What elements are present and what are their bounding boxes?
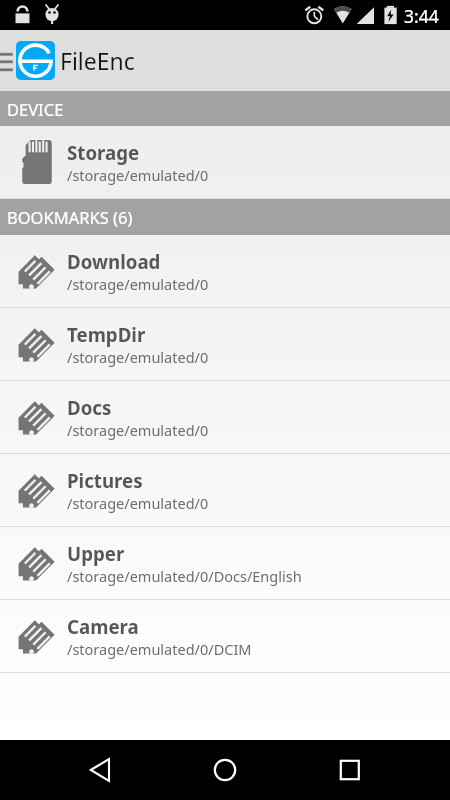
button[interactable]: Download (0, 235, 450, 307)
button[interactable]: Upper (0, 527, 450, 599)
staticText: /storage/emulated/0 (67, 347, 209, 367)
staticText: /storage/emulated/0 (67, 493, 209, 513)
staticText: TempDir (67, 322, 146, 347)
staticText: Upper (67, 541, 125, 566)
staticText: BOOKMARKS (6) (7, 206, 133, 228)
button[interactable]: Pictures (0, 454, 450, 526)
staticText: Camera (67, 614, 139, 639)
button[interactable]: Recent apps (312, 740, 388, 800)
button[interactable]: Camera (0, 600, 450, 672)
staticText: /storage/emulated/0 (67, 274, 209, 294)
button[interactable]: Storage (0, 126, 450, 198)
staticText: DEVICE (7, 98, 64, 120)
staticText: /storage/emulated/0 (67, 420, 209, 440)
staticText: FileEnc (60, 45, 135, 76)
staticText: /storage/emulated/0/DCIM (67, 639, 252, 659)
button[interactable]: Back (62, 740, 138, 800)
staticText: Pictures (67, 468, 143, 493)
staticText: /storage/emulated/0 (67, 165, 209, 185)
button[interactable]: TempDir (0, 308, 450, 380)
staticText: 3:44 (404, 4, 439, 28)
staticText: Download (67, 249, 161, 274)
staticText: Storage (67, 140, 140, 165)
staticText: Docs (67, 395, 112, 420)
staticText: /storage/emulated/0/Docs/English (67, 566, 302, 586)
button[interactable]: Open navigation drawer (0, 30, 16, 91)
button[interactable]: Docs (0, 381, 450, 453)
button[interactable]: Home (187, 740, 263, 800)
